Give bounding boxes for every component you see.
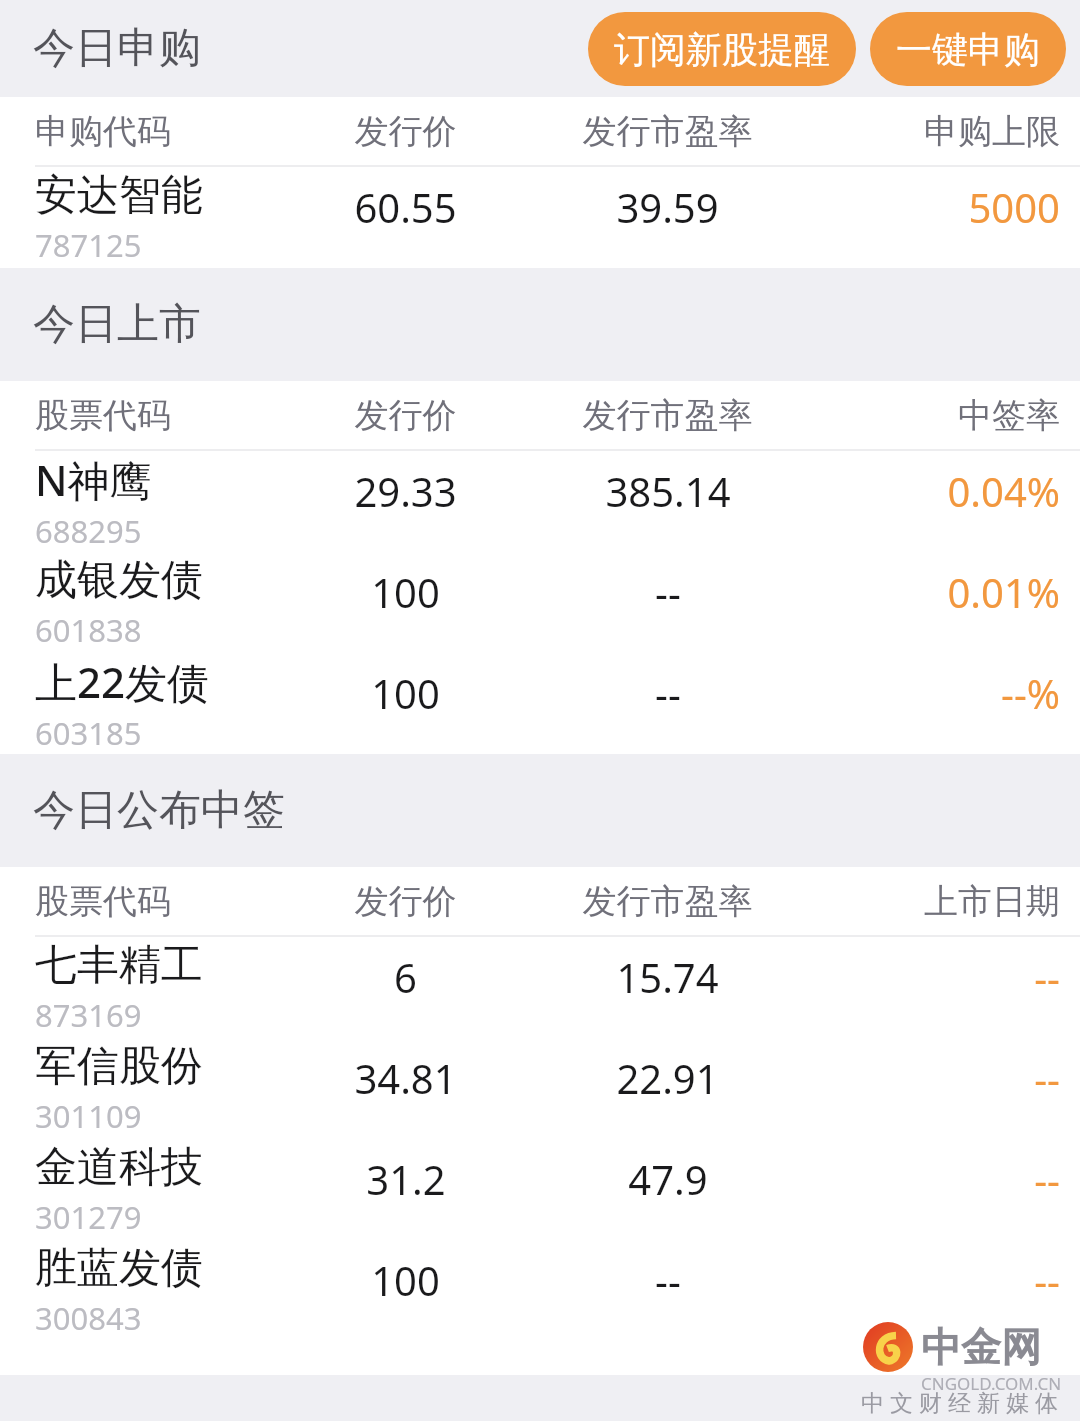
button[interactable]: 胜蓝发债 [0,1240,1080,1341]
staticText: -- [1034,1152,1060,1206]
button[interactable]: 金道科技 [0,1139,1080,1240]
staticText: 发行市盈率 [516,394,819,437]
staticText: 胜蓝发债 [35,1242,203,1295]
staticText: 47.9 [628,1152,708,1206]
staticText: 385.14 [605,464,731,518]
staticText: 中签率 [819,394,1060,437]
staticText: 七丰精工 [35,939,203,992]
staticText: 100 [371,1253,440,1307]
staticText: 603185 [35,712,142,754]
staticText: 31.2 [366,1152,446,1206]
staticText: 股票代码 [35,394,295,437]
staticText: 688295 [35,510,142,552]
staticText: 100 [371,666,440,720]
staticText: 股票代码 [35,880,295,923]
staticText: 成银发债 [35,554,203,607]
staticText: --% [1001,666,1060,720]
staticText: 今日公布中签 [33,784,285,837]
staticText: 发行价 [295,880,516,923]
staticText: 787125 [35,224,142,266]
staticText: 100 [371,565,440,619]
staticText: 今日上市 [33,298,201,351]
staticText: 一键申购 [896,27,1040,72]
staticText: 34.81 [354,1051,457,1105]
button[interactable]: 安达智能 [0,167,1080,268]
staticText: 上22发债 [35,653,210,710]
staticText: 301109 [35,1095,142,1137]
staticText: 300843 [35,1297,142,1339]
staticText: 0.01% [947,565,1060,619]
staticText: 601838 [35,609,142,651]
staticText: -- [1034,1051,1060,1105]
staticText: -- [655,666,681,720]
staticText: 今日申购 [33,22,201,75]
staticText: 60.55 [354,180,457,234]
staticText: 申购代码 [35,110,295,153]
button[interactable]: N神鹰 [0,451,1080,552]
button[interactable]: 一键申购 [870,12,1066,86]
staticText: 873169 [35,994,142,1036]
staticText: -- [1034,950,1060,1004]
staticText: 中金网 [921,1322,1041,1372]
other: 中金网 logo [863,1322,913,1372]
staticText: CNGOLD.COM.CN [921,1372,1062,1395]
staticText: 发行市盈率 [516,880,819,923]
button[interactable]: 军信股份 [0,1038,1080,1139]
staticText: 上市日期 [819,880,1060,923]
staticText: 发行价 [295,110,516,153]
staticText: 金道科技 [35,1141,203,1194]
staticText: 6 [394,950,417,1004]
staticText: -- [655,1253,681,1307]
staticText: 15.74 [616,950,719,1004]
staticText: 301279 [35,1196,142,1238]
staticText: 29.33 [354,464,457,518]
button[interactable]: 订阅新股提醒 [588,12,856,86]
staticText: -- [655,565,681,619]
button[interactable]: 成银发债 [0,552,1080,653]
staticText: 发行市盈率 [516,110,819,153]
staticText: 0.04% [947,464,1060,518]
staticText: 22.91 [616,1051,719,1105]
staticText: -- [1034,1253,1060,1307]
staticText: 军信股份 [35,1040,203,1093]
button[interactable]: 七丰精工 [0,937,1080,1038]
staticText: 发行价 [295,394,516,437]
staticText: 中 文 财 经 新 媒 体 [861,1386,1058,1417]
staticText: 5000 [968,180,1060,234]
staticText: 申购上限 [819,110,1060,153]
staticText: 39.59 [616,180,719,234]
staticText: 安达智能 [35,169,203,222]
staticText: 订阅新股提醒 [614,27,830,72]
button[interactable]: 上22发债 [0,653,1080,754]
staticText: N神鹰 [35,451,152,508]
